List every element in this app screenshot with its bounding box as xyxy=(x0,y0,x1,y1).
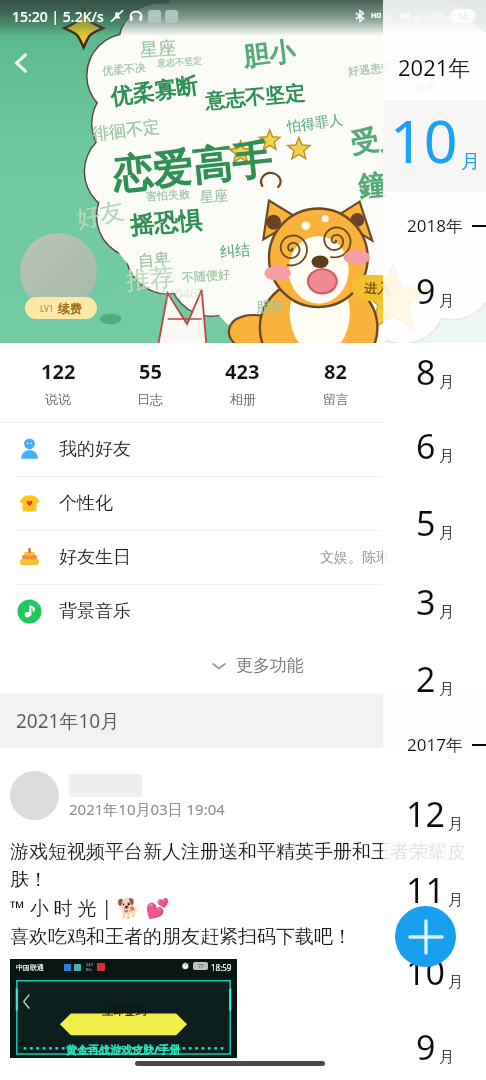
button[interactable]: 8 xyxy=(383,348,486,396)
staticText: 55 xyxy=(139,358,162,385)
staticText: 立即签到 xyxy=(102,1004,146,1018)
staticText: 日志 xyxy=(137,391,163,407)
staticText: 11 xyxy=(406,867,445,913)
button[interactable]: Search xyxy=(400,52,432,84)
staticText: 2021年 xyxy=(398,52,471,82)
staticText: 推荐 xyxy=(125,262,175,296)
staticText: 文娱。陈琳 xyxy=(320,549,390,567)
staticText: 77 xyxy=(198,963,204,970)
button[interactable]: 9 xyxy=(383,267,486,315)
staticText: 受人影 xyxy=(348,114,436,161)
button[interactable]: 5 xyxy=(383,499,486,547)
staticText: 优柔寡断 xyxy=(108,72,199,112)
staticText: 月 xyxy=(448,815,463,834)
staticText: 游戏短视频平台新人注册送和平精英手册和王者荣耀皮肤！ ™ 小 时 光 | 🐕 💕… xyxy=(10,840,486,949)
button[interactable]: 9 xyxy=(383,1023,486,1071)
staticText: 月 xyxy=(439,292,454,311)
staticText: 2017年 xyxy=(407,733,463,756)
staticText: 害怕失败 xyxy=(146,186,190,203)
staticText: QQ：73640468 xyxy=(112,284,205,306)
staticText: 月 xyxy=(439,373,454,392)
staticText: 恋爱高手 xyxy=(110,134,274,200)
staticText: 背景音乐 xyxy=(59,600,131,623)
button[interactable]: 423 xyxy=(196,343,289,422)
staticText: 我的好友 xyxy=(59,438,131,461)
button[interactable]: 11 xyxy=(383,866,486,914)
button[interactable]: 10 xyxy=(383,948,486,996)
staticText: 18:59 xyxy=(211,962,232,973)
button[interactable]: 55 xyxy=(104,343,196,422)
staticText: 个性化 xyxy=(59,492,113,515)
staticText: 不随便好 xyxy=(181,266,230,285)
staticText: 94 xyxy=(458,11,468,22)
staticText: 8 xyxy=(416,349,436,395)
staticText: 爱找 xyxy=(423,142,453,162)
staticText: 9 xyxy=(416,268,436,314)
button[interactable]: 2021年 xyxy=(383,48,486,86)
button[interactable]: 2018年 xyxy=(383,201,486,249)
staticText: LV1 xyxy=(40,303,54,314)
staticText: 摇恐惧 xyxy=(129,205,203,241)
staticText: 徘徊不定 xyxy=(91,116,161,145)
staticText: 胆小 xyxy=(241,35,297,74)
button[interactable]: 6 xyxy=(383,422,486,470)
staticText: 2018年 xyxy=(407,214,463,237)
staticText: 优柔不决 xyxy=(101,60,147,78)
staticText: 月 xyxy=(439,1048,454,1067)
staticText: 相册 xyxy=(230,391,256,407)
staticText: 朋友 xyxy=(255,297,285,317)
button[interactable]: 10 xyxy=(383,100,486,192)
staticText: 月 xyxy=(448,973,463,992)
staticText: 好遇患劳 xyxy=(347,60,393,78)
staticText: 3 xyxy=(416,579,436,625)
staticText: 中国联通 xyxy=(16,963,44,972)
button[interactable]: LV1 xyxy=(25,297,97,319)
staticText: 月 xyxy=(461,150,480,174)
button[interactable]: 更多功能 xyxy=(0,638,486,693)
staticText: 9 xyxy=(416,1024,436,1070)
button[interactable]: 个性化 xyxy=(0,477,486,530)
staticText: 月 xyxy=(439,524,454,543)
staticText: 2 xyxy=(416,656,436,702)
staticText: 6 xyxy=(416,423,436,469)
staticText: 月 xyxy=(439,680,454,699)
button[interactable]: Shared screenshot xyxy=(10,959,237,1058)
staticText: 鐘 xyxy=(356,167,387,204)
staticText: 月 xyxy=(439,447,454,466)
staticText: 留言 xyxy=(323,391,349,407)
button[interactable]: 我的好友 xyxy=(0,423,486,476)
button[interactable]: 122 xyxy=(12,343,104,422)
staticText: 10 xyxy=(390,100,458,180)
staticText: 2021年10月 xyxy=(16,708,120,734)
staticText: 更多功能 xyxy=(236,655,304,676)
staticText: 意志不坚定 xyxy=(204,81,306,114)
button[interactable]: 12 xyxy=(383,790,486,838)
staticText: 423 xyxy=(225,358,260,385)
staticText: 说说 xyxy=(45,391,71,407)
button[interactable]: 82 xyxy=(289,343,382,422)
button[interactable]: Post author avatar xyxy=(10,771,59,820)
staticText: 星座 xyxy=(139,37,177,62)
staticText: 意志不坚定 xyxy=(157,55,202,68)
button[interactable]: 好友生日 xyxy=(0,531,486,584)
staticText: 10 xyxy=(406,949,445,995)
staticText: 5 xyxy=(416,500,436,546)
staticText: 自卑 xyxy=(137,249,171,271)
button[interactable]: 进入 xyxy=(352,275,402,301)
button[interactable]: 3 xyxy=(383,578,486,626)
button[interactable]: Add new post xyxy=(395,906,456,967)
staticText: 243 B/s xyxy=(86,962,93,972)
button[interactable]: Profile avatar xyxy=(20,233,97,310)
staticText: 12 xyxy=(406,791,445,837)
staticText: 15:20 | 5.2K/s xyxy=(12,7,104,26)
staticText: 纠结 xyxy=(219,241,251,262)
button[interactable]: Menu xyxy=(444,52,476,84)
button[interactable]: 2017年 xyxy=(383,720,486,768)
staticText: 续费 xyxy=(58,301,82,316)
staticText: 82 xyxy=(324,358,347,385)
staticText: ⏱ xyxy=(181,962,190,970)
button[interactable]: 背景音乐 xyxy=(0,585,486,638)
staticText: 怕得罪人 xyxy=(286,111,344,137)
button[interactable]: Back xyxy=(2,44,40,82)
button[interactable]: 2 xyxy=(383,655,486,703)
